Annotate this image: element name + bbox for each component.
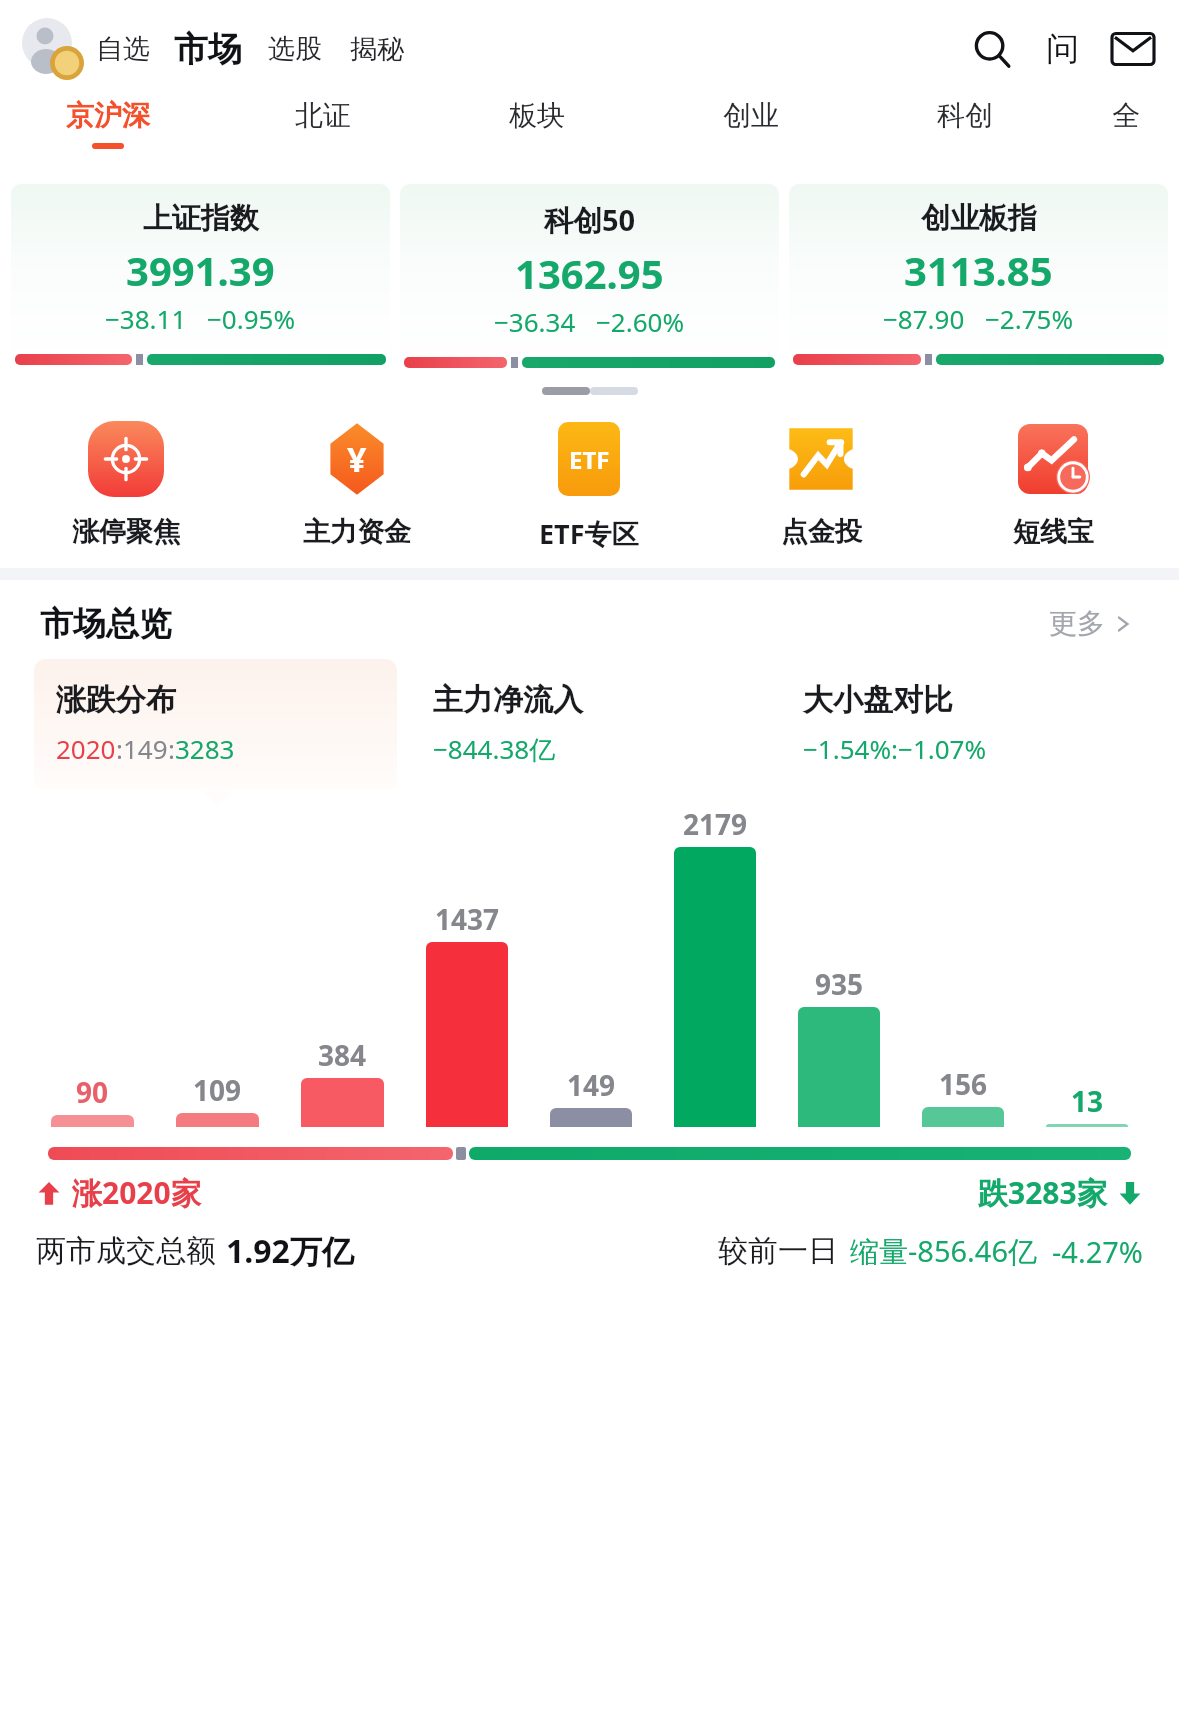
staticText: ¥ bbox=[347, 436, 367, 482]
staticText: 109 bbox=[193, 1071, 242, 1109]
button[interactable]: 短线宝 bbox=[937, 417, 1169, 549]
staticText: 3283 bbox=[175, 731, 235, 766]
staticText: 缩量-856.46亿 bbox=[850, 1231, 1038, 1271]
staticText: 主力净流入 bbox=[433, 681, 583, 719]
staticText: −2.60% bbox=[596, 304, 685, 339]
button[interactable]: 点金投 bbox=[705, 417, 937, 549]
button[interactable]: 自选 bbox=[90, 24, 156, 74]
staticText: −87.90 bbox=[883, 301, 965, 336]
staticText: 大小盘对比 bbox=[803, 681, 953, 719]
button[interactable]: Profile bbox=[22, 18, 84, 80]
button[interactable]: 主力净流入 bbox=[413, 659, 775, 791]
staticText: −38.11 bbox=[105, 301, 187, 336]
staticText: 156 bbox=[939, 1065, 988, 1103]
button[interactable]: 创业 bbox=[644, 98, 858, 178]
staticText: ETF bbox=[569, 443, 610, 476]
staticText: 短线宝 bbox=[1013, 515, 1094, 549]
button[interactable]: 上证指数 bbox=[11, 184, 390, 374]
button[interactable]: Search bbox=[966, 23, 1018, 75]
button[interactable]: 问 bbox=[1040, 22, 1085, 76]
staticText: 创业板指 bbox=[921, 200, 1037, 237]
staticText: 384 bbox=[318, 1036, 367, 1074]
staticText: 北证 bbox=[295, 98, 351, 133]
staticText: 创业 bbox=[723, 98, 779, 133]
button[interactable]: 京沪深 bbox=[0, 98, 215, 178]
staticText: 市场总览 bbox=[40, 603, 172, 645]
staticText: −0.95% bbox=[207, 301, 296, 336]
staticText: 两市成交总额 bbox=[36, 1232, 216, 1270]
staticText: 跌3283家 bbox=[978, 1172, 1107, 1213]
button[interactable]: 板块 bbox=[430, 98, 644, 178]
staticText: −2.75% bbox=[985, 301, 1074, 336]
button[interactable]: 更多 bbox=[1043, 600, 1139, 647]
button[interactable]: 揭秘 bbox=[344, 24, 410, 74]
staticText: 上证指数 bbox=[143, 200, 259, 237]
staticText: 全 bbox=[1112, 98, 1140, 133]
staticText: 935 bbox=[815, 965, 864, 1003]
staticText: 京沪深 bbox=[66, 98, 150, 133]
staticText: : bbox=[168, 731, 175, 766]
staticText: 科创50 bbox=[544, 200, 636, 240]
staticText: 3991.39 bbox=[126, 243, 275, 297]
staticText: 板块 bbox=[509, 98, 565, 133]
staticText: 科创 bbox=[937, 98, 993, 133]
button[interactable]: ETF bbox=[473, 417, 705, 552]
button[interactable]: Messages bbox=[1107, 23, 1159, 75]
button[interactable]: 科创 bbox=[858, 98, 1072, 178]
button[interactable]: 大小盘对比 bbox=[783, 659, 1145, 790]
button[interactable]: 涨停聚焦 bbox=[10, 417, 241, 549]
staticText: −844.38亿 bbox=[433, 731, 556, 767]
staticText: 涨2020家 bbox=[72, 1172, 201, 1213]
staticText: ETF专区 bbox=[539, 515, 639, 552]
staticText: : bbox=[116, 731, 123, 766]
button[interactable]: 全 bbox=[1072, 98, 1179, 178]
staticText: 主力资金 bbox=[303, 515, 411, 549]
staticText: 3113.85 bbox=[904, 243, 1053, 297]
staticText: 90 bbox=[76, 1073, 109, 1111]
staticText: −36.34 bbox=[494, 304, 576, 339]
staticText: 涨停聚焦 bbox=[72, 515, 180, 549]
staticText: 149 bbox=[567, 1066, 616, 1104]
button[interactable]: 创业板指 bbox=[789, 184, 1168, 374]
button[interactable]: 涨跌分布 bbox=[34, 659, 397, 790]
staticText: 1437 bbox=[435, 900, 500, 938]
staticText: 1.92万亿 bbox=[226, 1229, 354, 1273]
button[interactable]: 科创50 bbox=[400, 184, 779, 377]
staticText: -4.27% bbox=[1052, 1232, 1143, 1271]
staticText: 涨跌分布 bbox=[56, 681, 176, 719]
button[interactable]: 市场 bbox=[170, 24, 246, 75]
staticText: 2179 bbox=[683, 805, 748, 843]
staticText: 149 bbox=[123, 731, 168, 766]
button[interactable]: 选股 bbox=[262, 24, 328, 74]
button[interactable]: ¥ bbox=[241, 417, 473, 549]
staticText: −1.54%:−1.07% bbox=[803, 731, 987, 766]
staticText: 1362.95 bbox=[515, 246, 664, 300]
button[interactable]: 北证 bbox=[215, 98, 430, 178]
staticText: 较前一日 bbox=[718, 1232, 838, 1270]
staticText: 13 bbox=[1071, 1082, 1104, 1120]
staticText: 点金投 bbox=[781, 515, 862, 549]
staticText: 2020 bbox=[56, 731, 116, 766]
staticText: 更多 bbox=[1049, 606, 1105, 641]
